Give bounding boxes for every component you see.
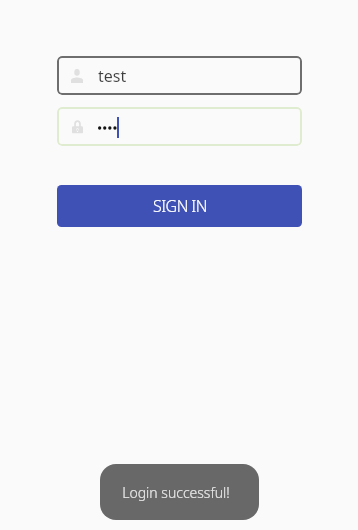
staticText: SIGN IN <box>153 195 207 217</box>
button[interactable]: Password <box>57 107 302 146</box>
button[interactable]: test <box>57 56 302 95</box>
staticText: test <box>98 65 127 87</box>
staticText: Login successful! <box>122 483 230 502</box>
button[interactable]: SIGN IN <box>57 185 302 227</box>
